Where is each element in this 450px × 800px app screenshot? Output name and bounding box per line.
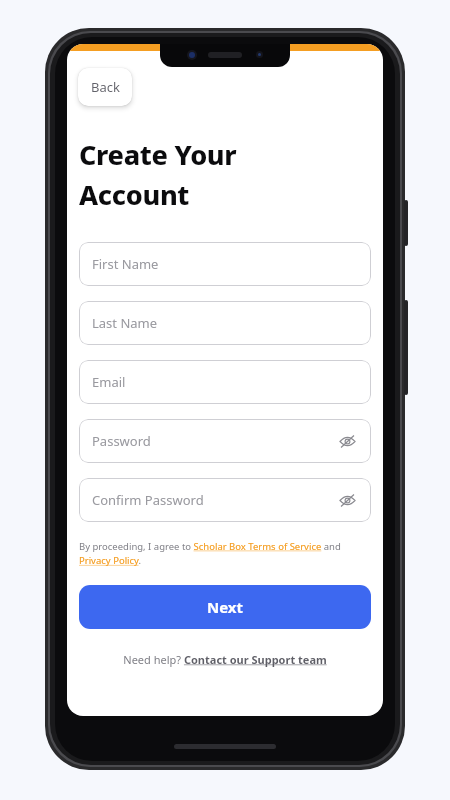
staticText: By proceeding, I agree to Scholar Box Te…: [79, 540, 371, 567]
button[interactable]: Need help? Contact our Support team: [79, 652, 371, 667]
staticText: Next: [207, 597, 244, 617]
button[interactable]: First Name: [79, 242, 371, 286]
button[interactable]: Email: [79, 360, 371, 404]
button[interactable]: Last Name: [79, 301, 371, 345]
staticText: Email: [92, 373, 358, 391]
staticText: First Name: [92, 255, 358, 273]
staticText: Last Name: [92, 314, 358, 332]
button[interactable]: Password: [79, 419, 371, 463]
staticText: Password: [92, 432, 336, 450]
button[interactable]: Next: [79, 585, 371, 629]
staticText: Confirm Password: [92, 491, 336, 509]
button[interactable]: Show password: [336, 489, 358, 511]
staticText: Need help? Contact our Support team: [79, 652, 371, 667]
button[interactable]: Show password: [336, 430, 358, 452]
button[interactable]: Confirm Password: [79, 478, 371, 522]
button[interactable]: By proceeding, I agree to Scholar Box Te…: [79, 540, 371, 567]
button[interactable]: Back: [78, 68, 132, 106]
staticText: Create Your: [79, 136, 237, 173]
staticText: Account: [79, 176, 190, 213]
staticText: Back: [91, 78, 120, 96]
